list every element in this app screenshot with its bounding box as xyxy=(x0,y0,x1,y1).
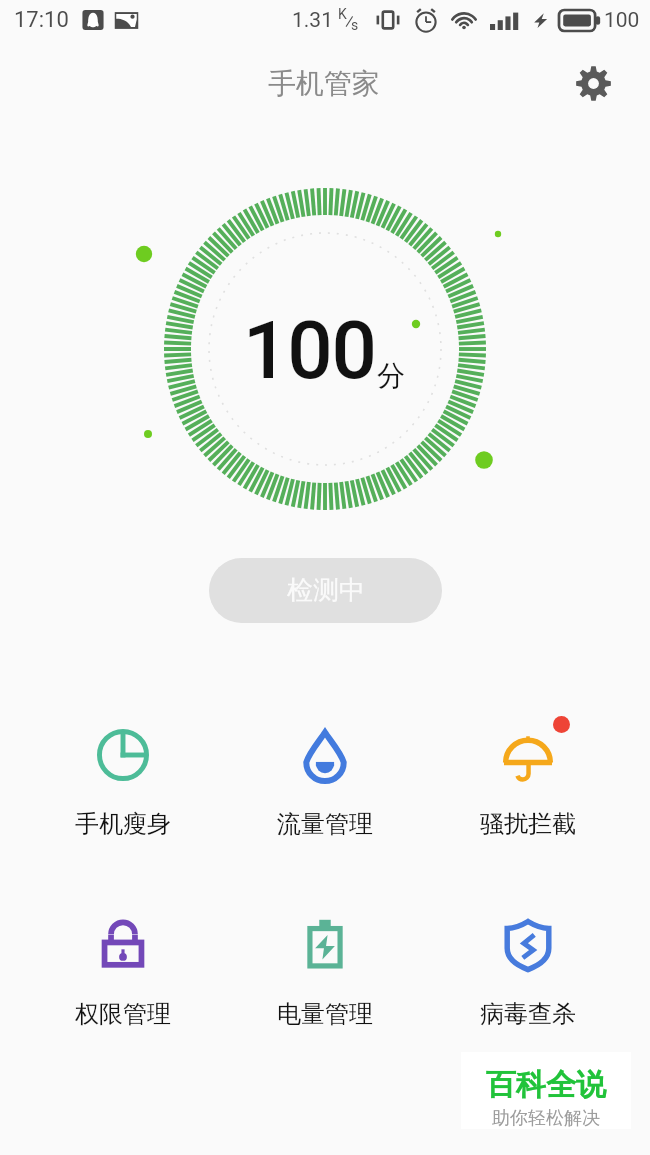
button[interactable]: 骚扰拦截 xyxy=(448,722,608,839)
staticText: 1.31 xyxy=(292,8,333,33)
staticText: 手机瘦身 xyxy=(75,809,171,839)
button[interactable]: 流量管理 xyxy=(245,722,405,839)
staticText: 17:10 xyxy=(14,7,69,33)
staticText: 电量管理 xyxy=(277,999,373,1029)
staticText: 病毒查杀 xyxy=(480,999,576,1029)
button[interactable]: 病毒查杀 xyxy=(448,912,608,1029)
staticText: ⁄ xyxy=(345,10,354,32)
button[interactable]: 权限管理 xyxy=(43,912,203,1029)
staticText: K xyxy=(338,6,347,22)
staticText: 手机管家 xyxy=(268,66,380,101)
staticText: 权限管理 xyxy=(75,999,171,1029)
staticText: 流量管理 xyxy=(277,809,373,839)
staticText: 分 xyxy=(377,358,405,393)
staticText: 100 xyxy=(243,304,376,398)
staticText: 百科全说 xyxy=(486,1066,606,1104)
staticText: 助你轻松解决 xyxy=(492,1107,600,1130)
staticText: s xyxy=(351,17,359,33)
staticText: 骚扰拦截 xyxy=(480,809,576,839)
button[interactable]: 检测中 xyxy=(209,558,442,623)
button[interactable]: 电量管理 xyxy=(245,912,405,1029)
staticText: 100 xyxy=(604,8,640,33)
button[interactable]: 手机瘦身 xyxy=(43,722,203,839)
staticText: 检测中 xyxy=(287,574,365,607)
button[interactable]: Settings xyxy=(570,60,616,106)
